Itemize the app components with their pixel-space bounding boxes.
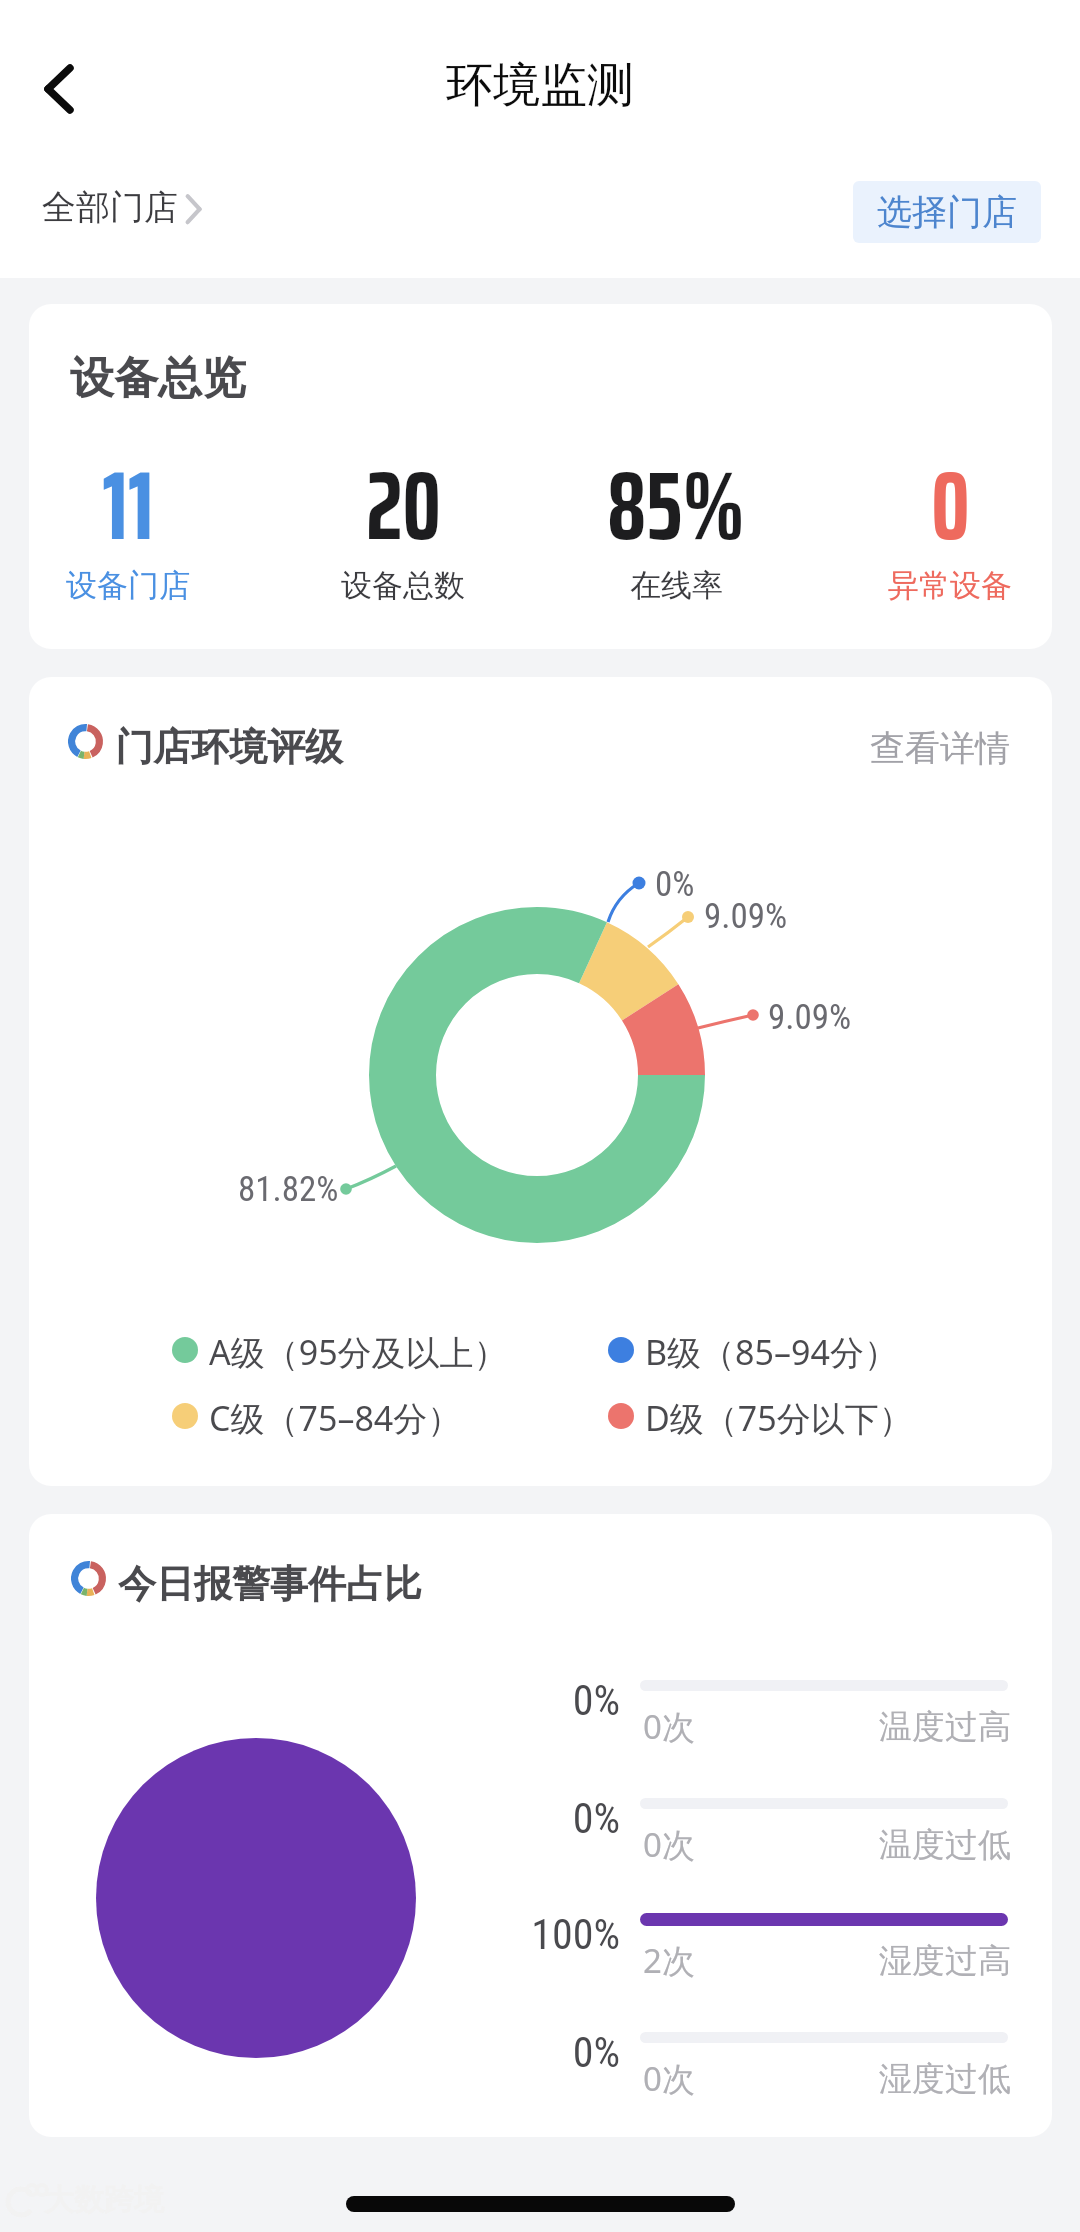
staticText: 11 [102, 430, 154, 581]
staticText: 2次 [643, 1938, 695, 1983]
button[interactable]: 查看详情 [840, 720, 1010, 776]
staticText: 100% [531, 1910, 620, 1959]
staticText: 设备门店 [66, 566, 190, 605]
staticText: 0% [655, 864, 695, 905]
staticText: 湿度过低 [879, 2058, 1011, 2100]
staticText: 0次 [643, 1704, 695, 1749]
staticText: 0次 [643, 1822, 695, 1867]
staticText: 0% [572, 1676, 620, 1725]
staticText: A级（95分及以上） [209, 1329, 508, 1375]
staticText: 全部门店 [42, 186, 178, 229]
staticText: 温度过低 [879, 1824, 1011, 1866]
button[interactable]: 全部门店 [42, 186, 208, 229]
staticText: 在线率 [630, 566, 723, 605]
staticText: 温度过高 [879, 1706, 1011, 1748]
staticText: 0次 [643, 2056, 695, 2101]
button[interactable]: 选择门店 [853, 181, 1041, 243]
staticText: 环境监测 [446, 56, 634, 115]
staticText: 0 [931, 430, 970, 581]
staticText: 20 [366, 430, 441, 581]
staticText: 85% [607, 430, 745, 581]
staticText: 选择门店 [877, 190, 1017, 234]
staticText: D级（75分以下） [645, 1395, 913, 1441]
staticText: 门店环境评级 [115, 723, 343, 771]
button[interactable]: Back [22, 54, 92, 124]
staticText: 异常设备 [888, 566, 1012, 605]
staticText: 今日报警事件占比 [118, 1560, 422, 1608]
staticText: 9.09% [768, 997, 852, 1038]
staticText: B级（85–94分） [645, 1329, 898, 1375]
staticText: 设备总数 [341, 566, 465, 605]
staticText: 0% [572, 1794, 620, 1843]
staticText: 0% [572, 2028, 620, 2077]
staticText: 湿度过高 [879, 1940, 1011, 1982]
staticText: 设备总览 [70, 351, 246, 406]
staticText: 9.09% [704, 896, 788, 937]
staticText: 81.82% [238, 1169, 339, 1210]
staticText: C级（75–84分） [209, 1395, 462, 1441]
staticText: 查看详情 [870, 726, 1010, 770]
